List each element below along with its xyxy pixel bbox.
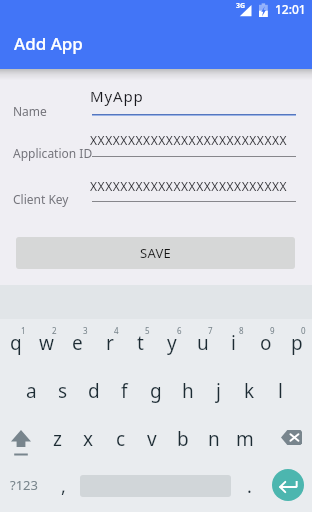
staticText: d — [88, 378, 100, 404]
staticText: n — [208, 426, 220, 452]
staticText: XXXXXXXXXXXXXXXXXXXXXXXXXX — [90, 178, 288, 194]
button[interactable]: , — [47, 462, 80, 510]
staticText: v — [147, 426, 157, 452]
button[interactable]: s — [47, 367, 78, 415]
staticText: q — [10, 330, 22, 356]
staticText: 6 — [177, 325, 182, 336]
button[interactable]: t — [125, 319, 156, 367]
staticText: z — [53, 426, 62, 452]
staticText: 4 — [114, 325, 119, 336]
button[interactable]: h — [172, 367, 203, 415]
button[interactable]: Enter — [272, 469, 304, 501]
button[interactable]: q — [0, 319, 31, 367]
staticText: 12:01 — [275, 1, 306, 17]
staticText: e — [72, 330, 83, 356]
staticText: f — [121, 378, 128, 404]
button[interactable]: d — [78, 367, 109, 415]
staticText: 7 — [208, 325, 213, 336]
button[interactable]: Backspace — [270, 413, 312, 461]
button[interactable]: w — [31, 319, 62, 367]
button[interactable]: p — [281, 319, 312, 367]
button[interactable]: ?123 — [0, 462, 47, 510]
button[interactable]: e — [62, 319, 93, 367]
button[interactable]: o — [250, 319, 281, 367]
button[interactable]: . — [234, 462, 265, 510]
button[interactable]: x — [73, 415, 104, 463]
staticText: t — [137, 330, 144, 356]
staticText: h — [182, 378, 194, 404]
button[interactable]: Shift — [0, 419, 42, 467]
staticText: i — [231, 330, 236, 356]
staticText: 8 — [239, 325, 244, 336]
button[interactable]: k — [234, 367, 265, 415]
staticText: c — [116, 426, 126, 452]
button[interactable]: z — [42, 415, 73, 463]
staticText: 0 — [301, 325, 306, 336]
staticText: Client Key — [13, 191, 69, 207]
staticText: g — [150, 378, 162, 404]
button[interactable]: y — [156, 319, 187, 367]
button[interactable]: n — [198, 415, 229, 463]
staticText: p — [291, 330, 303, 356]
button[interactable]: l — [265, 367, 296, 415]
staticText: MyApp — [90, 86, 144, 106]
staticText: XXXXXXXXXXXXXXXXXXXXXXXXXX — [90, 132, 288, 148]
staticText: , — [61, 474, 66, 499]
button[interactable]: r — [94, 319, 125, 367]
staticText: b — [177, 426, 189, 452]
staticText: Add App — [14, 32, 83, 55]
staticText: a — [26, 378, 37, 404]
button[interactable]: v — [136, 415, 167, 463]
button[interactable]: a — [16, 367, 47, 415]
staticText: Application ID — [13, 145, 93, 161]
staticText: w — [39, 330, 54, 356]
staticText: SAVE — [140, 244, 172, 262]
staticText: r — [106, 330, 114, 356]
button[interactable]: m — [229, 415, 260, 463]
button[interactable]: c — [105, 415, 136, 463]
staticText: 2 — [52, 325, 57, 336]
button[interactable]: i — [218, 319, 249, 367]
staticText: l — [278, 378, 283, 404]
staticText: o — [260, 330, 272, 356]
button[interactable]: u — [187, 319, 218, 367]
staticText: j — [216, 378, 221, 404]
staticText: Name — [13, 103, 47, 119]
staticText: x — [83, 426, 94, 452]
staticText: m — [236, 426, 254, 452]
staticText: 3 — [83, 325, 88, 336]
staticText: 5 — [145, 325, 150, 336]
staticText: 3G — [236, 1, 246, 11]
button[interactable]: b — [167, 415, 198, 463]
button[interactable]: SAVE — [16, 237, 295, 269]
button[interactable]: j — [203, 367, 234, 415]
staticText: u — [197, 330, 209, 356]
staticText: y — [167, 330, 177, 356]
staticText: k — [244, 378, 255, 404]
staticText: . — [247, 474, 252, 499]
staticText: 1 — [21, 325, 26, 336]
staticText: s — [58, 378, 68, 404]
staticText: ?123 — [10, 476, 38, 494]
button[interactable]: f — [109, 367, 140, 415]
button[interactable]: g — [140, 367, 171, 415]
staticText: 9 — [270, 325, 275, 336]
